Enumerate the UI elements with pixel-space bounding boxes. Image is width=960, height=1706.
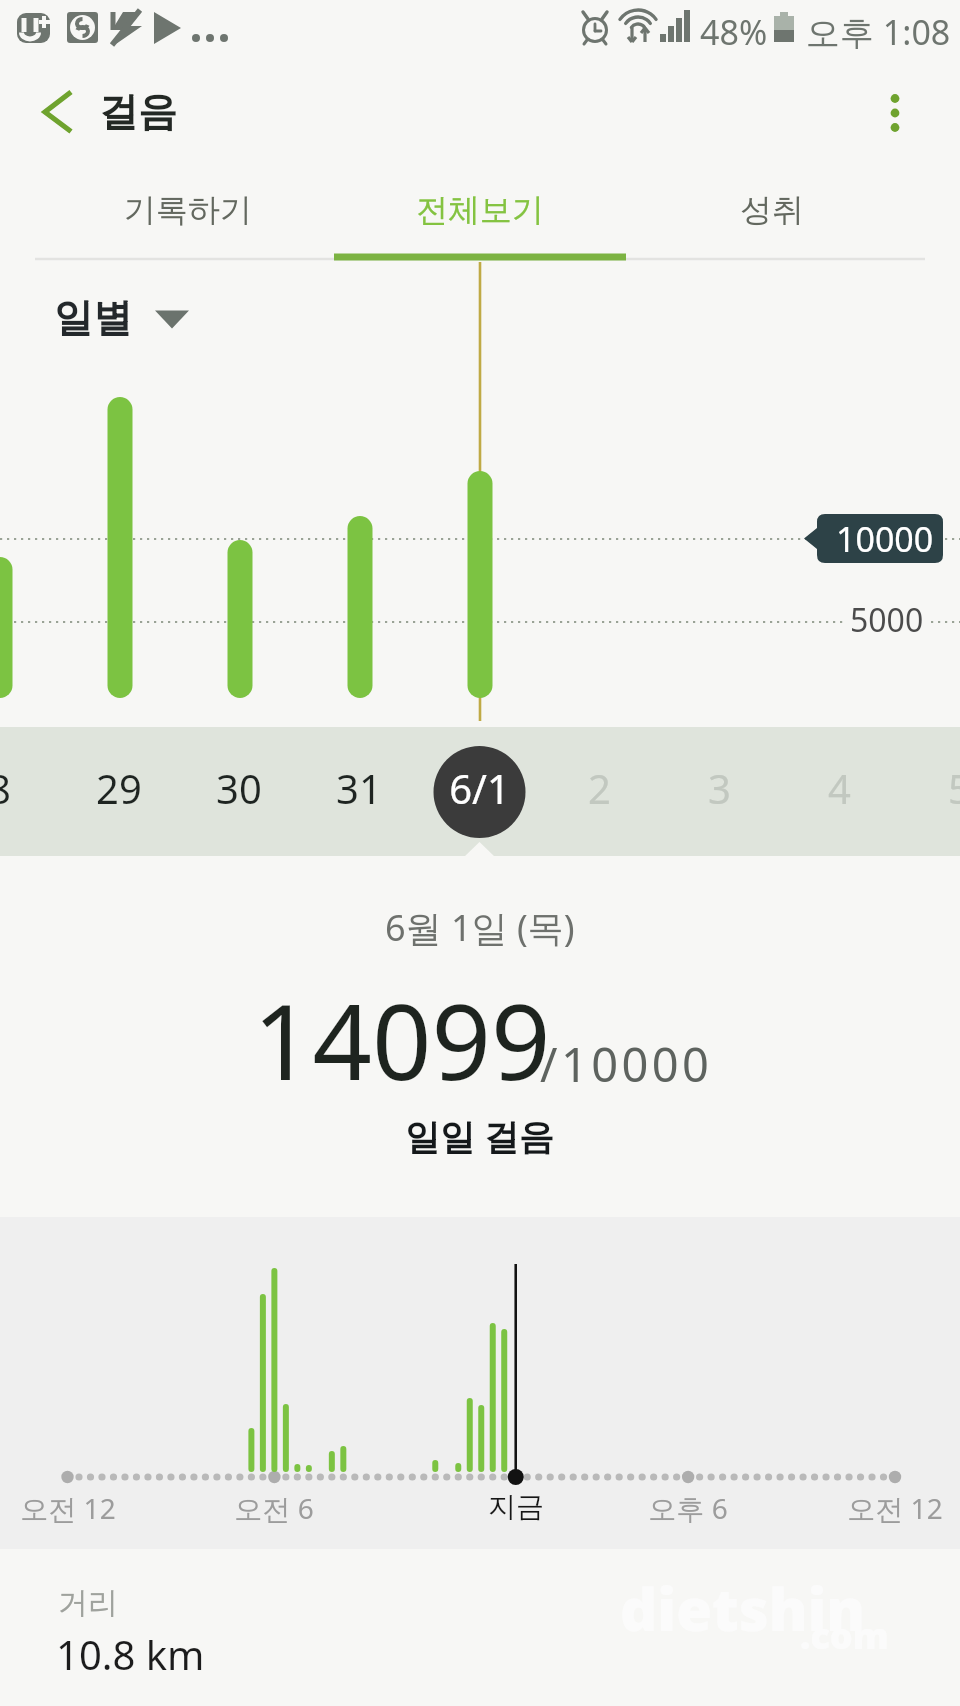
- staticText: 29: [96, 761, 142, 815]
- button[interactable]: 8: [0, 727, 59, 856]
- staticText: 거리: [58, 1584, 118, 1622]
- staticText: 전체보기: [416, 190, 544, 230]
- staticText: 31: [336, 761, 382, 815]
- staticText: 오전 12: [20, 1489, 116, 1527]
- staticText: 6월 1일 (목): [385, 903, 575, 952]
- button[interactable]: 전체보기: [334, 170, 626, 262]
- staticText: 걸음: [99, 87, 177, 136]
- staticText: 14099: [253, 969, 551, 1111]
- button[interactable]: Back: [6, 58, 96, 170]
- button[interactable]: 5: [899, 727, 960, 856]
- staticText: 10000: [836, 516, 934, 562]
- staticText: 성취: [740, 190, 804, 230]
- staticText: 8: [0, 761, 11, 815]
- staticText: 오전 6: [234, 1489, 314, 1527]
- button[interactable]: 6/1: [419, 727, 539, 856]
- button[interactable]: 3: [659, 727, 779, 856]
- button[interactable]: 31: [299, 727, 419, 856]
- button[interactable]: 성취: [626, 170, 918, 262]
- staticText: 5: [948, 761, 960, 815]
- staticText: /10000: [540, 1032, 713, 1096]
- staticText: 10.8 km: [56, 1627, 205, 1681]
- staticText: 5000: [850, 598, 924, 642]
- staticText: 기록하기: [124, 190, 252, 230]
- button[interactable]: 4: [779, 727, 899, 856]
- button[interactable]: 일별: [34, 275, 210, 360]
- button[interactable]: 기록하기: [42, 170, 334, 262]
- button[interactable]: More options: [850, 58, 940, 170]
- staticText: 2: [588, 761, 611, 815]
- staticText: 일별: [54, 293, 132, 342]
- staticText: 일일 걸음: [405, 1112, 555, 1160]
- button[interactable]: 29: [59, 727, 179, 856]
- staticText: 오전 12: [847, 1489, 943, 1527]
- button[interactable]: 30: [179, 727, 299, 856]
- staticText: 지금: [488, 1489, 544, 1524]
- staticText: 4: [828, 761, 851, 815]
- staticText: 오후 6: [648, 1489, 728, 1527]
- staticText: 오후 1:08: [806, 9, 951, 55]
- staticText: 3: [708, 761, 731, 815]
- staticText: 48%: [700, 9, 768, 55]
- button[interactable]: 2: [539, 727, 659, 856]
- staticText: 6/1: [449, 761, 510, 815]
- staticText: 30: [216, 761, 262, 815]
